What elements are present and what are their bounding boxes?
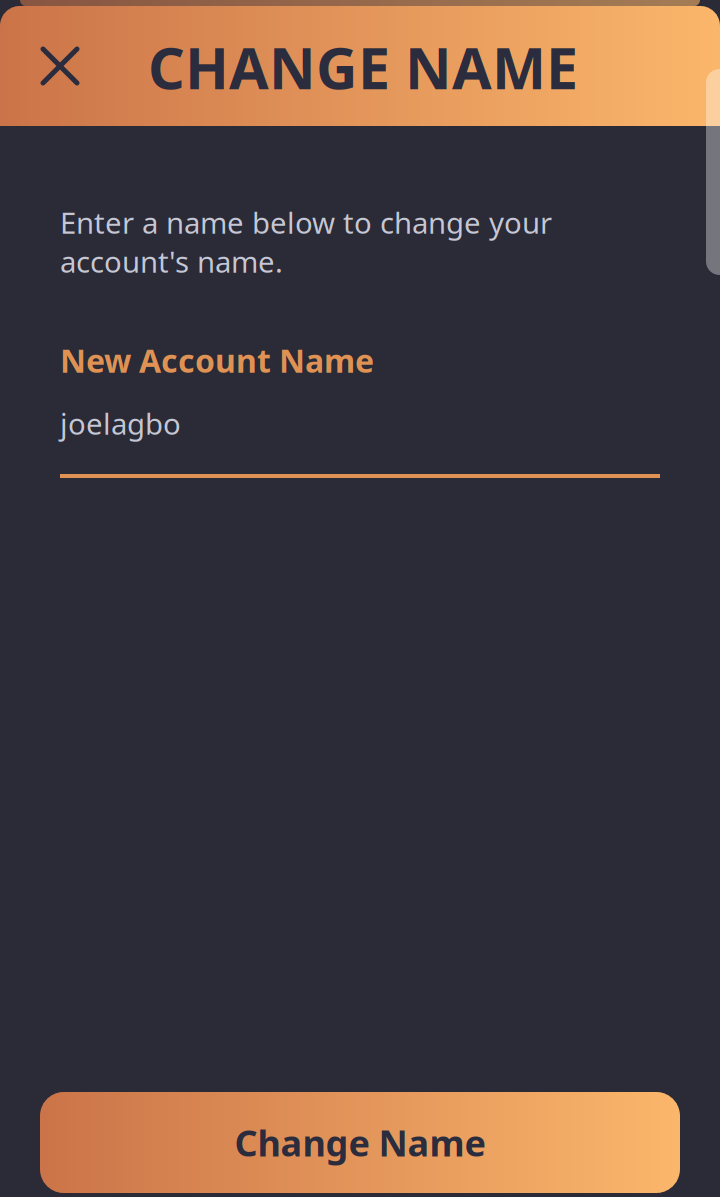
staticText: joelagbo: [60, 404, 181, 443]
button[interactable]: Change Name: [40, 1092, 680, 1193]
button[interactable]: Close: [20, 26, 100, 106]
staticText: New Account Name: [60, 339, 374, 381]
button[interactable]: New Account Name: [60, 339, 660, 478]
staticText: Enter a name below to change your accoun…: [60, 203, 552, 281]
staticText: CHANGE NAME: [148, 29, 578, 105]
staticText: Change Name: [234, 1119, 485, 1166]
